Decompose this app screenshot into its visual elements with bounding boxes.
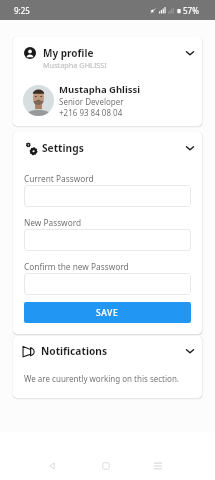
staticText: My profile — [43, 46, 94, 60]
staticText: Current Password — [24, 173, 94, 184]
staticText: Mustapha GHLISSI — [43, 60, 107, 70]
staticText: Senior Developer — [59, 96, 124, 107]
staticText: 57% — [183, 5, 199, 16]
button[interactable]: Settings — [13, 132, 202, 161]
staticText: Settings — [42, 141, 84, 155]
staticText: 9:25 — [14, 5, 30, 16]
staticText: Notifications — [41, 344, 108, 358]
button[interactable]: Home — [91, 454, 121, 478]
staticText: SAVE — [96, 307, 119, 319]
staticText: Mustapha Ghlissi — [59, 83, 141, 96]
staticText: Confirm the new Password — [24, 261, 129, 272]
staticText: +216 93 84 08 04 — [59, 107, 123, 118]
button[interactable]: Notifications — [13, 336, 202, 364]
button[interactable] — [24, 273, 191, 295]
staticText: We are cuurently working on this section… — [24, 373, 179, 384]
button[interactable] — [24, 229, 191, 251]
staticText: New Password — [24, 217, 82, 228]
button[interactable]: Back — [37, 454, 67, 478]
button[interactable]: My profile — [13, 37, 202, 76]
button[interactable]: Recent apps — [143, 454, 173, 478]
button[interactable] — [24, 185, 191, 207]
button[interactable]: SAVE — [24, 302, 191, 323]
